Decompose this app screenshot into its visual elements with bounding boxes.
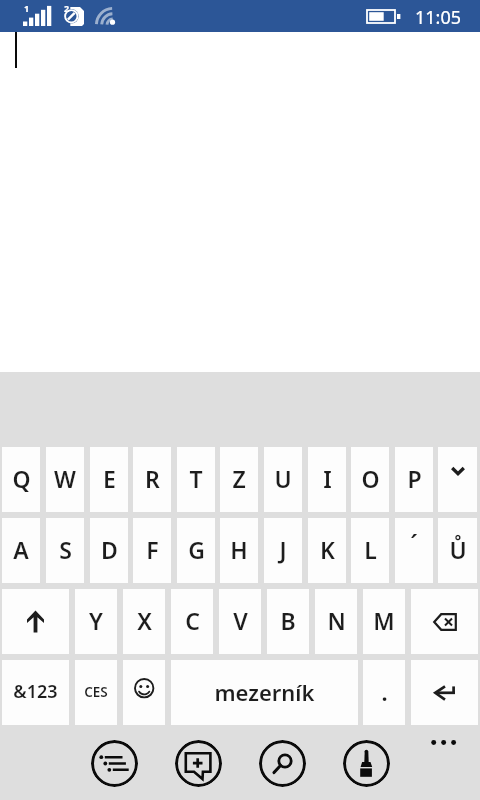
button[interactable]: Ů — [438, 518, 477, 583]
button[interactable]: O — [351, 447, 389, 512]
button[interactable]: Z — [220, 447, 258, 512]
staticText: N — [327, 605, 346, 636]
staticText: C — [185, 605, 200, 636]
staticText: K — [320, 534, 335, 565]
button[interactable]: E — [90, 447, 128, 512]
other: Enter — [434, 684, 456, 702]
button[interactable]: D — [90, 518, 128, 583]
button[interactable]: Q — [2, 447, 40, 512]
button[interactable]: Shift — [2, 589, 69, 654]
staticText: D — [101, 534, 118, 565]
staticText: M — [373, 605, 395, 636]
button[interactable]: K — [308, 518, 346, 583]
staticText: mezerník — [214, 677, 315, 707]
button[interactable]: U — [264, 447, 302, 512]
button[interactable]: F — [133, 518, 171, 583]
button[interactable]: P — [395, 447, 433, 512]
staticText: P — [407, 463, 422, 494]
staticText: F — [146, 534, 159, 565]
staticText: S — [59, 534, 72, 565]
button[interactable]: Lists — [91, 740, 138, 787]
button[interactable]: V — [219, 589, 261, 654]
button[interactable]: CES — [75, 660, 117, 725]
staticText: 1 — [24, 2, 30, 14]
staticText: A — [13, 534, 29, 565]
button[interactable]: L — [351, 518, 389, 583]
button[interactable]: More options — [412, 725, 480, 763]
button[interactable]: C — [171, 589, 213, 654]
staticText: R — [145, 463, 160, 494]
button[interactable]: . — [363, 660, 405, 725]
staticText: J — [279, 534, 287, 565]
other: Hide keyboard — [449, 459, 467, 501]
button[interactable]: R — [133, 447, 171, 512]
staticText: L — [364, 534, 377, 565]
staticText: CES — [84, 683, 108, 701]
button[interactable]: Backspace — [411, 589, 478, 654]
staticText: 2 — [64, 2, 70, 14]
staticText: U — [274, 463, 292, 494]
button[interactable]: W — [46, 447, 84, 512]
button[interactable]: ´ — [395, 518, 433, 583]
button[interactable]: T — [177, 447, 215, 512]
button[interactable]: N — [315, 589, 357, 654]
staticText: . — [381, 675, 388, 708]
staticText: I — [323, 463, 332, 494]
button[interactable]: X — [123, 589, 165, 654]
staticText: E — [103, 463, 116, 494]
button[interactable]: M — [363, 589, 405, 654]
button[interactable]: A — [2, 518, 40, 583]
button[interactable]: Y — [75, 589, 117, 654]
button[interactable]: H — [220, 518, 258, 583]
staticText: Y — [89, 605, 103, 636]
button[interactable]: Emoji — [123, 660, 165, 725]
button[interactable]: I — [308, 447, 346, 512]
staticText: X — [137, 605, 152, 636]
button[interactable]: Search — [259, 740, 306, 787]
staticText: ´ — [410, 527, 418, 558]
button[interactable]: &123 — [2, 660, 69, 725]
staticText: G — [188, 534, 205, 565]
staticText: T — [189, 463, 203, 494]
staticText: &123 — [13, 679, 58, 704]
other: Backspace — [433, 613, 457, 631]
staticText: Ů — [449, 534, 467, 565]
button[interactable]: S — [46, 518, 84, 583]
staticText: Q — [12, 463, 31, 494]
other: Emoji — [134, 678, 155, 707]
staticText: B — [280, 605, 296, 636]
button[interactable]: Enter — [411, 660, 478, 725]
button[interactable]: J — [264, 518, 302, 583]
button[interactable]: mezerník — [171, 660, 358, 725]
staticText: W — [54, 463, 76, 494]
staticText: V — [233, 605, 248, 636]
button[interactable]: New note — [175, 740, 222, 787]
staticText: 11:05 — [415, 5, 462, 30]
button[interactable]: Hide keyboard — [438, 447, 477, 512]
staticText: O — [361, 463, 380, 494]
button[interactable]: G — [177, 518, 215, 583]
other: Shift — [27, 609, 44, 635]
button[interactable]: B — [267, 589, 309, 654]
staticText: H — [230, 534, 248, 565]
staticText: Z — [232, 463, 246, 494]
button[interactable]: Ink — [343, 740, 390, 787]
